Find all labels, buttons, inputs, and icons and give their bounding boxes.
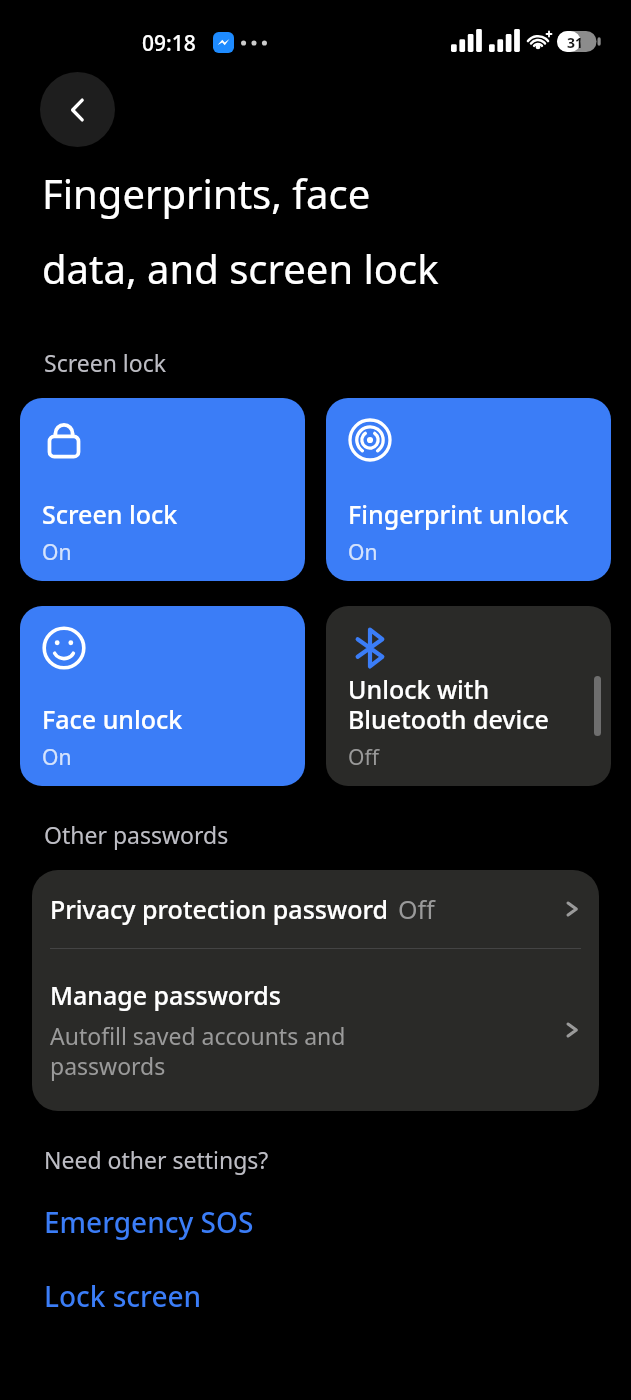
staticText: Fingerprint unlock xyxy=(348,497,569,531)
staticText: On xyxy=(42,743,72,772)
staticText: data, and screen lock xyxy=(42,241,439,295)
staticText: Off xyxy=(348,743,379,772)
staticText: Manage passwords xyxy=(50,978,281,1012)
staticText: Screen lock xyxy=(42,497,178,531)
staticText: Lock screen xyxy=(44,1277,202,1315)
staticText: Face unlock xyxy=(42,702,183,736)
staticText: 09:18 xyxy=(142,29,196,58)
staticText: On xyxy=(348,538,378,567)
staticText: Autofill saved accounts and passwords xyxy=(50,1020,346,1082)
staticText: Fingerprints, face xyxy=(42,166,371,220)
staticText: Screen lock xyxy=(44,347,167,378)
button[interactable]: Emergency SOS xyxy=(0,1197,631,1247)
staticText: On xyxy=(42,538,72,567)
button[interactable]: Back xyxy=(40,72,115,147)
staticText: Off xyxy=(398,892,435,926)
staticText: Privacy protection password xyxy=(50,892,388,926)
button[interactable]: Privacy protection password xyxy=(32,870,599,948)
button[interactable]: Fingerprint unlock xyxy=(326,398,611,581)
staticText: Emergency SOS xyxy=(44,1203,254,1241)
staticText: Other passwords xyxy=(44,819,229,850)
button[interactable]: Screen lock xyxy=(20,398,305,581)
button[interactable]: Unlock with Bluetooth device xyxy=(326,606,611,786)
staticText: 31 xyxy=(567,33,584,52)
button[interactable]: Face unlock xyxy=(20,606,305,786)
button[interactable]: Lock screen xyxy=(0,1271,631,1321)
staticText: Need other settings? xyxy=(44,1144,269,1175)
staticText: Unlock with Bluetooth device xyxy=(348,672,549,736)
button[interactable]: Manage passwords xyxy=(32,949,599,1111)
